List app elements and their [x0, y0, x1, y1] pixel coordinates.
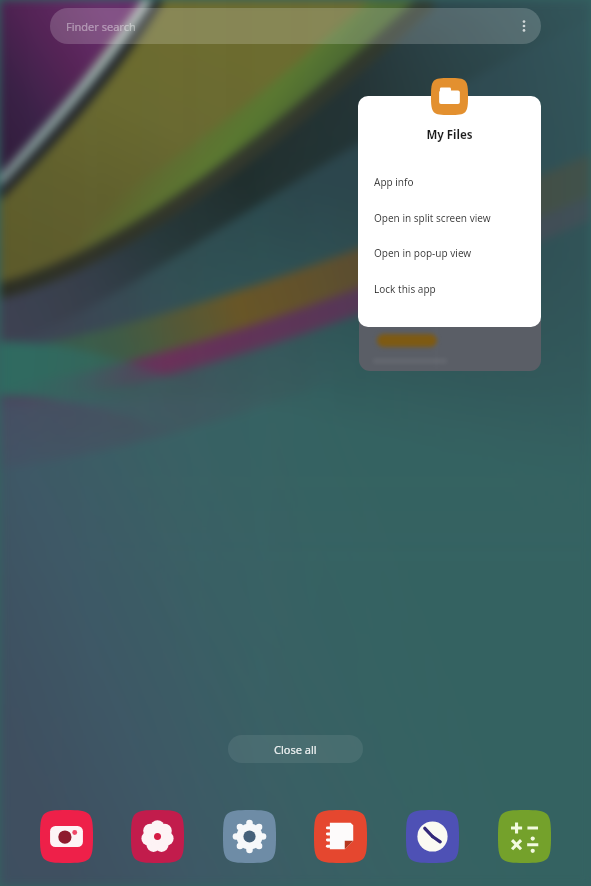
- staticText: App info: [374, 175, 414, 189]
- button[interactable]: Open in pop-up view: [358, 235, 541, 271]
- button[interactable]: More options: [510, 12, 538, 40]
- button[interactable]: App info: [358, 164, 541, 200]
- button[interactable]: Close all: [228, 735, 363, 763]
- staticText: Close all: [274, 742, 317, 757]
- staticText: Open in split screen view: [374, 211, 491, 225]
- button[interactable]: Camera: [40, 810, 93, 863]
- staticText: My Files: [358, 127, 541, 143]
- button[interactable]: [359, 170, 541, 371]
- button[interactable]: Lock this app: [358, 271, 541, 307]
- staticText: Open in pop-up view: [374, 246, 472, 260]
- button[interactable]: Clock: [406, 810, 459, 863]
- button[interactable]: Calculator: [498, 810, 551, 863]
- button[interactable]: Settings: [223, 810, 276, 863]
- staticText: Finder search: [66, 19, 136, 34]
- button[interactable]: My Files app icon: [431, 78, 468, 115]
- button[interactable]: Finder search: [50, 8, 541, 44]
- button[interactable]: Notes: [314, 810, 367, 863]
- button[interactable]: Gallery: [131, 810, 184, 863]
- staticText: Lock this app: [374, 282, 436, 296]
- button[interactable]: Open in split screen view: [358, 200, 541, 236]
